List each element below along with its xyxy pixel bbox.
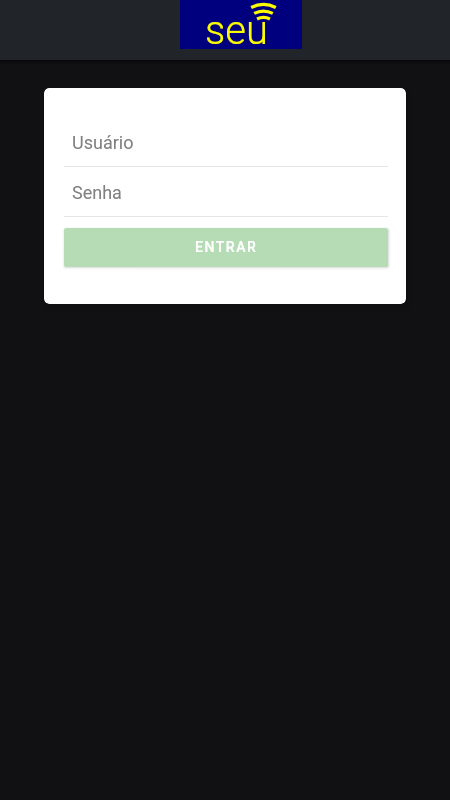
staticText: ENTRAR	[195, 239, 258, 255]
button[interactable]: seu logo	[180, 0, 302, 49]
staticText: Senha	[72, 182, 122, 203]
button[interactable]: Usuário	[64, 121, 388, 167]
button[interactable]: Senha	[64, 171, 388, 217]
staticText: Usuário	[72, 132, 134, 153]
button[interactable]: ENTRAR	[64, 228, 388, 267]
staticText: seu	[205, 7, 268, 54]
